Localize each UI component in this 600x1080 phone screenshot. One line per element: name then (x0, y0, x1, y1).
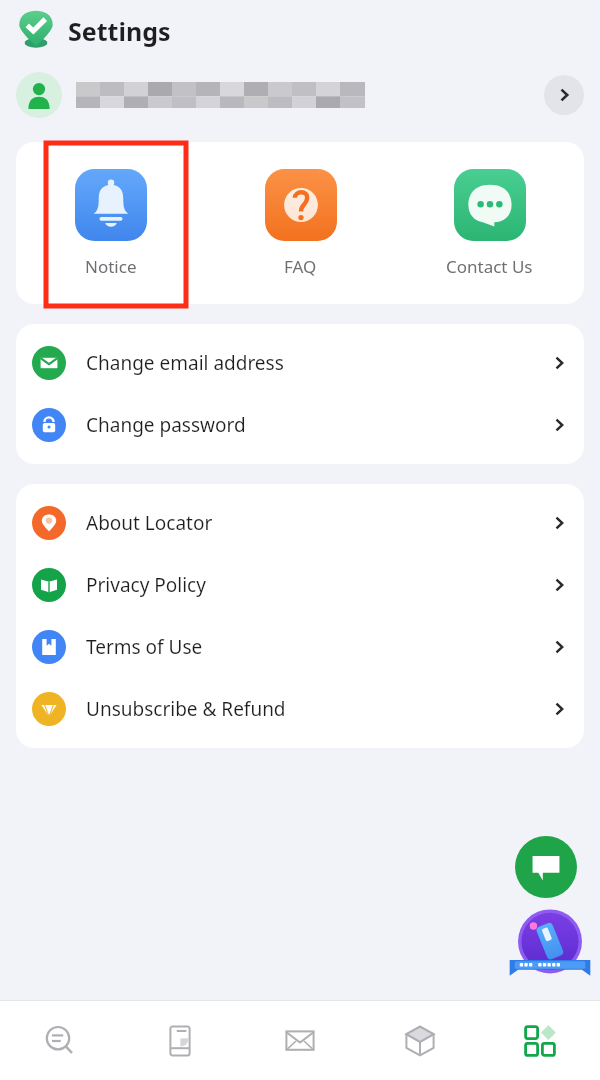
staticText: Privacy Policy (86, 572, 550, 598)
staticText: FAQ (284, 255, 317, 278)
staticText: Unsubscribe & Refund (86, 696, 550, 722)
button[interactable]: Open chat support (515, 836, 577, 898)
button[interactable]: Search (0, 1001, 120, 1080)
button[interactable]: Change password (16, 394, 584, 456)
staticText: Change password (86, 412, 550, 438)
button[interactable]: Privacy Policy (16, 554, 584, 616)
button[interactable]: How locate guide (508, 915, 592, 981)
button[interactable]: Unsubscribe & Refund (16, 678, 584, 740)
staticText: Terms of Use (86, 634, 550, 660)
staticText: Settings (68, 14, 171, 48)
button[interactable]: FAQ (206, 142, 395, 304)
staticText: Change email address (86, 350, 550, 376)
staticText: About Locator (86, 510, 550, 536)
button[interactable]: Devices (120, 1001, 240, 1080)
button[interactable]: Change email address (16, 332, 584, 394)
button[interactable]: Package (360, 1001, 480, 1080)
button[interactable]: About Locator (16, 492, 584, 554)
button[interactable]: Contact Us (395, 142, 584, 304)
button[interactable]: Notice (16, 142, 206, 304)
staticText: Notice (85, 255, 137, 278)
button[interactable]: Menu (480, 1001, 600, 1080)
staticText: Contact Us (446, 255, 533, 278)
button[interactable]: Terms of Use (16, 616, 584, 678)
button[interactable] (0, 62, 600, 128)
button[interactable]: Messages (240, 1001, 360, 1080)
